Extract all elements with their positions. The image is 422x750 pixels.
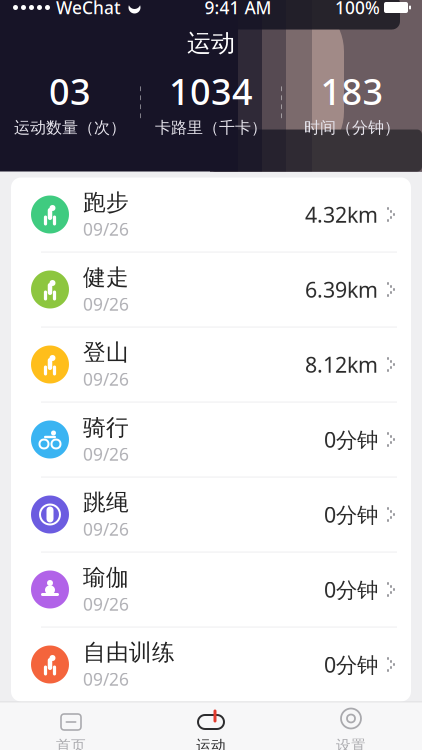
staticText: 时间（分钟） <box>304 118 400 137</box>
button[interactable]: 瑜伽 <box>11 552 411 627</box>
staticText: 4.32km <box>305 200 378 229</box>
staticText: 09/26 <box>83 442 129 465</box>
staticText: 09/26 <box>83 367 129 390</box>
staticText: 09/26 <box>83 217 129 240</box>
staticText: 9:41 AM <box>204 0 271 19</box>
staticText: 登山 <box>83 339 129 366</box>
staticText: 运动 <box>196 736 226 750</box>
staticText: 100% <box>335 0 380 19</box>
staticText: 首页 <box>56 736 86 750</box>
staticText: 0分钟 <box>324 425 378 454</box>
staticText: 健走 <box>83 264 129 291</box>
staticText: 09/26 <box>83 592 129 615</box>
staticText: 8.12km <box>305 350 378 379</box>
staticText: 0分钟 <box>324 650 378 679</box>
staticText: 瑜伽 <box>83 564 129 591</box>
staticText: 卡路里（千卡） <box>155 118 267 137</box>
staticText: 09/26 <box>83 667 129 690</box>
staticText: 03 <box>49 67 91 115</box>
staticText: 09/26 <box>83 292 129 315</box>
button[interactable]: 跑步 <box>11 177 411 252</box>
button[interactable]: 骑行 <box>11 402 411 477</box>
staticText: 跑步 <box>83 189 129 216</box>
staticText: 跳绳 <box>83 489 129 516</box>
staticText: 6.39km <box>305 275 378 304</box>
staticText: 自由训练 <box>83 639 175 666</box>
button[interactable]: 跳绳 <box>11 477 411 552</box>
button[interactable]: 登山 <box>11 327 411 402</box>
button[interactable]: 自由训练 <box>11 627 411 701</box>
button[interactable]: 设置 <box>281 705 421 750</box>
staticText: 骑行 <box>83 414 129 441</box>
staticText: 0分钟 <box>324 500 378 529</box>
staticText: 设置 <box>336 736 366 750</box>
staticText: 运动 <box>187 28 235 58</box>
staticText: 09/26 <box>83 517 129 540</box>
staticText: 183 <box>320 67 383 115</box>
button[interactable]: 健走 <box>11 252 411 327</box>
staticText: 运动数量（次） <box>14 118 126 137</box>
staticText: WeChat <box>56 0 121 19</box>
staticText: 1034 <box>169 67 253 115</box>
staticText: 0分钟 <box>324 575 378 604</box>
button[interactable]: 首页 <box>1 705 141 750</box>
button[interactable]: 运动 <box>141 705 281 750</box>
